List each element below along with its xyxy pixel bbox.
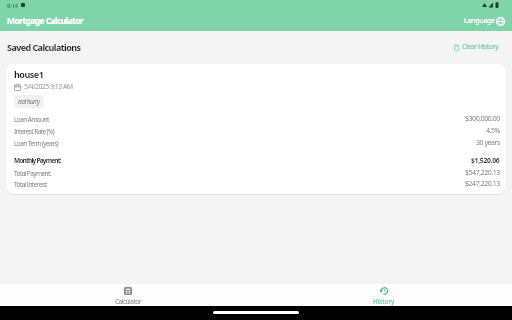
button[interactable]: Clear History: [454, 42, 499, 52]
staticText: Loan Amount: [14, 115, 49, 124]
staticText: house1: [14, 68, 44, 80]
staticText: $300,000.00: [465, 114, 500, 124]
button[interactable]: History: [256, 287, 512, 306]
staticText: $1,520.06: [471, 156, 500, 165]
staticText: History: [373, 297, 395, 306]
button[interactable]: Calculator: [0, 287, 256, 306]
button[interactable]: house1: [7, 64, 505, 194]
staticText: 30 years: [476, 138, 500, 148]
staticText: not hurry: [18, 97, 40, 106]
staticText: 9:14: [7, 2, 18, 9]
staticText: $547,220.13: [465, 168, 500, 178]
staticText: Loan Term (years): [14, 139, 59, 148]
staticText: Total Payment:: [14, 169, 51, 178]
staticText: Total Interest:: [14, 180, 48, 189]
staticText: Mortgage Calculator: [7, 15, 84, 27]
staticText: Saved Calculations: [7, 41, 81, 53]
staticText: Clear History: [462, 42, 499, 52]
staticText: Language: [464, 16, 495, 26]
staticText: Calculator: [115, 297, 141, 306]
staticText: Monthly Payment:: [14, 156, 61, 165]
staticText: 5/4/2025 9:13 AM: [24, 82, 73, 92]
staticText: 4.5%: [486, 126, 500, 136]
staticText: $247,220.13: [465, 179, 500, 189]
button[interactable]: Language: [464, 16, 505, 26]
staticText: Interest Rate (%): [14, 127, 55, 136]
